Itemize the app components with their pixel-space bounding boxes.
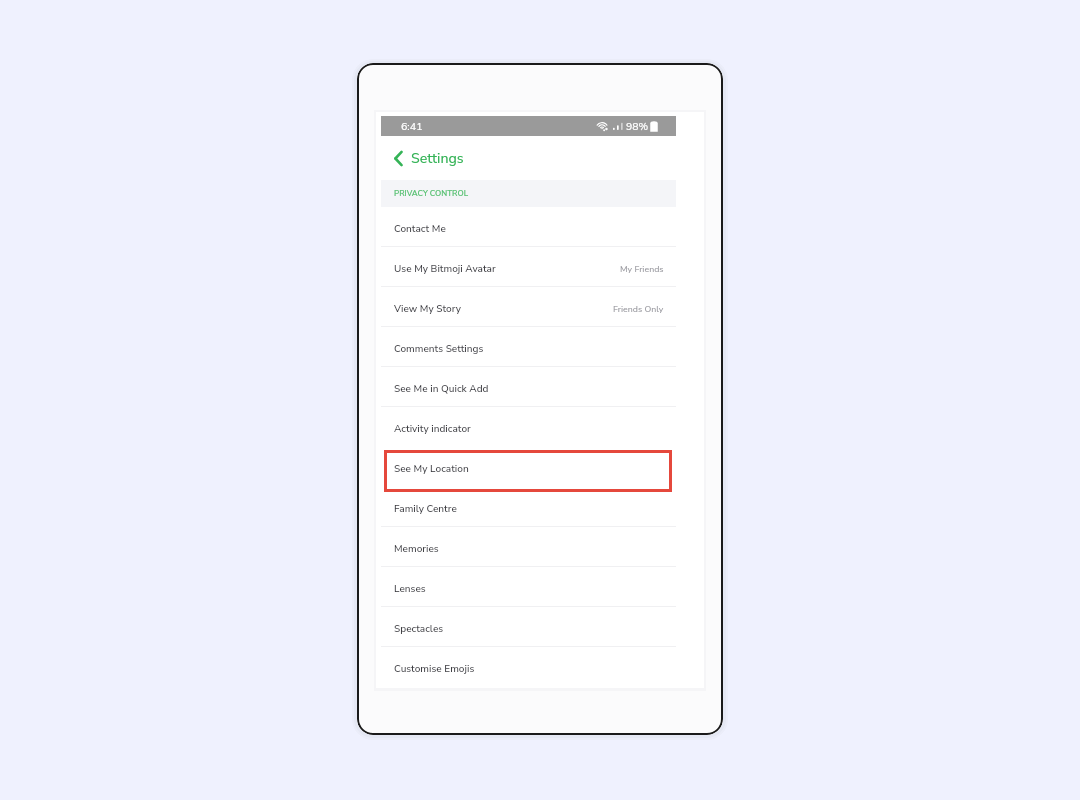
button[interactable]: See Me in Quick Add (381, 367, 676, 407)
button[interactable]: Activity indicator (381, 407, 676, 447)
staticText: See Me in Quick Add (394, 382, 489, 396)
staticText: My Friends (620, 263, 664, 275)
button[interactable]: Customise Emojis (381, 647, 676, 687)
staticText: See My Location (394, 462, 469, 476)
staticText: Memories (394, 542, 439, 556)
button[interactable]: Memories (381, 527, 676, 567)
staticText: Family Centre (394, 502, 457, 516)
staticText: Friends Only (613, 303, 664, 315)
staticText: Contact Me (394, 222, 446, 236)
button[interactable]: Back (389, 149, 407, 167)
button[interactable]: Use My Bitmoji Avatar (381, 247, 676, 287)
staticText: Settings (411, 149, 464, 168)
staticText: PRIVACY CONTROL (394, 188, 469, 199)
staticText: 6:41 (401, 119, 423, 133)
staticText: Comments Settings (394, 342, 484, 356)
staticText: Lenses (394, 582, 426, 596)
button[interactable]: Family Centre (381, 487, 676, 527)
staticText: Activity indicator (394, 422, 471, 436)
button[interactable]: Contact Me (381, 207, 676, 247)
button[interactable]: Spectacles (381, 607, 676, 647)
staticText: Use My Bitmoji Avatar (394, 262, 496, 276)
button[interactable]: Comments Settings (381, 327, 676, 367)
staticText: View My Story (394, 302, 461, 316)
staticText: Customise Emojis (394, 662, 475, 676)
button[interactable]: See My Location (381, 447, 676, 487)
button[interactable]: Lenses (381, 567, 676, 607)
staticText: Spectacles (394, 622, 444, 636)
staticText: 98% (626, 119, 649, 133)
button[interactable]: View My Story (381, 287, 676, 327)
